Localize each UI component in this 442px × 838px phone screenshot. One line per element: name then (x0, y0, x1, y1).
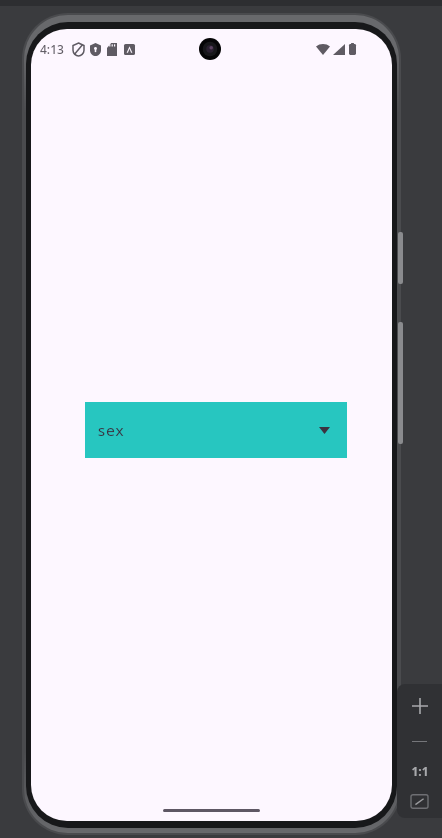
button[interactable]: Zoom in (397, 688, 442, 724)
button[interactable]: Fit to screen (397, 786, 442, 816)
staticText: 4:13 (40, 41, 64, 57)
button[interactable]: Zoom out (397, 728, 442, 754)
button[interactable]: sex (85, 402, 347, 458)
button[interactable]: 1:1 (397, 758, 442, 784)
staticText: sex (97, 420, 125, 440)
staticText: 1:1 (411, 763, 429, 779)
